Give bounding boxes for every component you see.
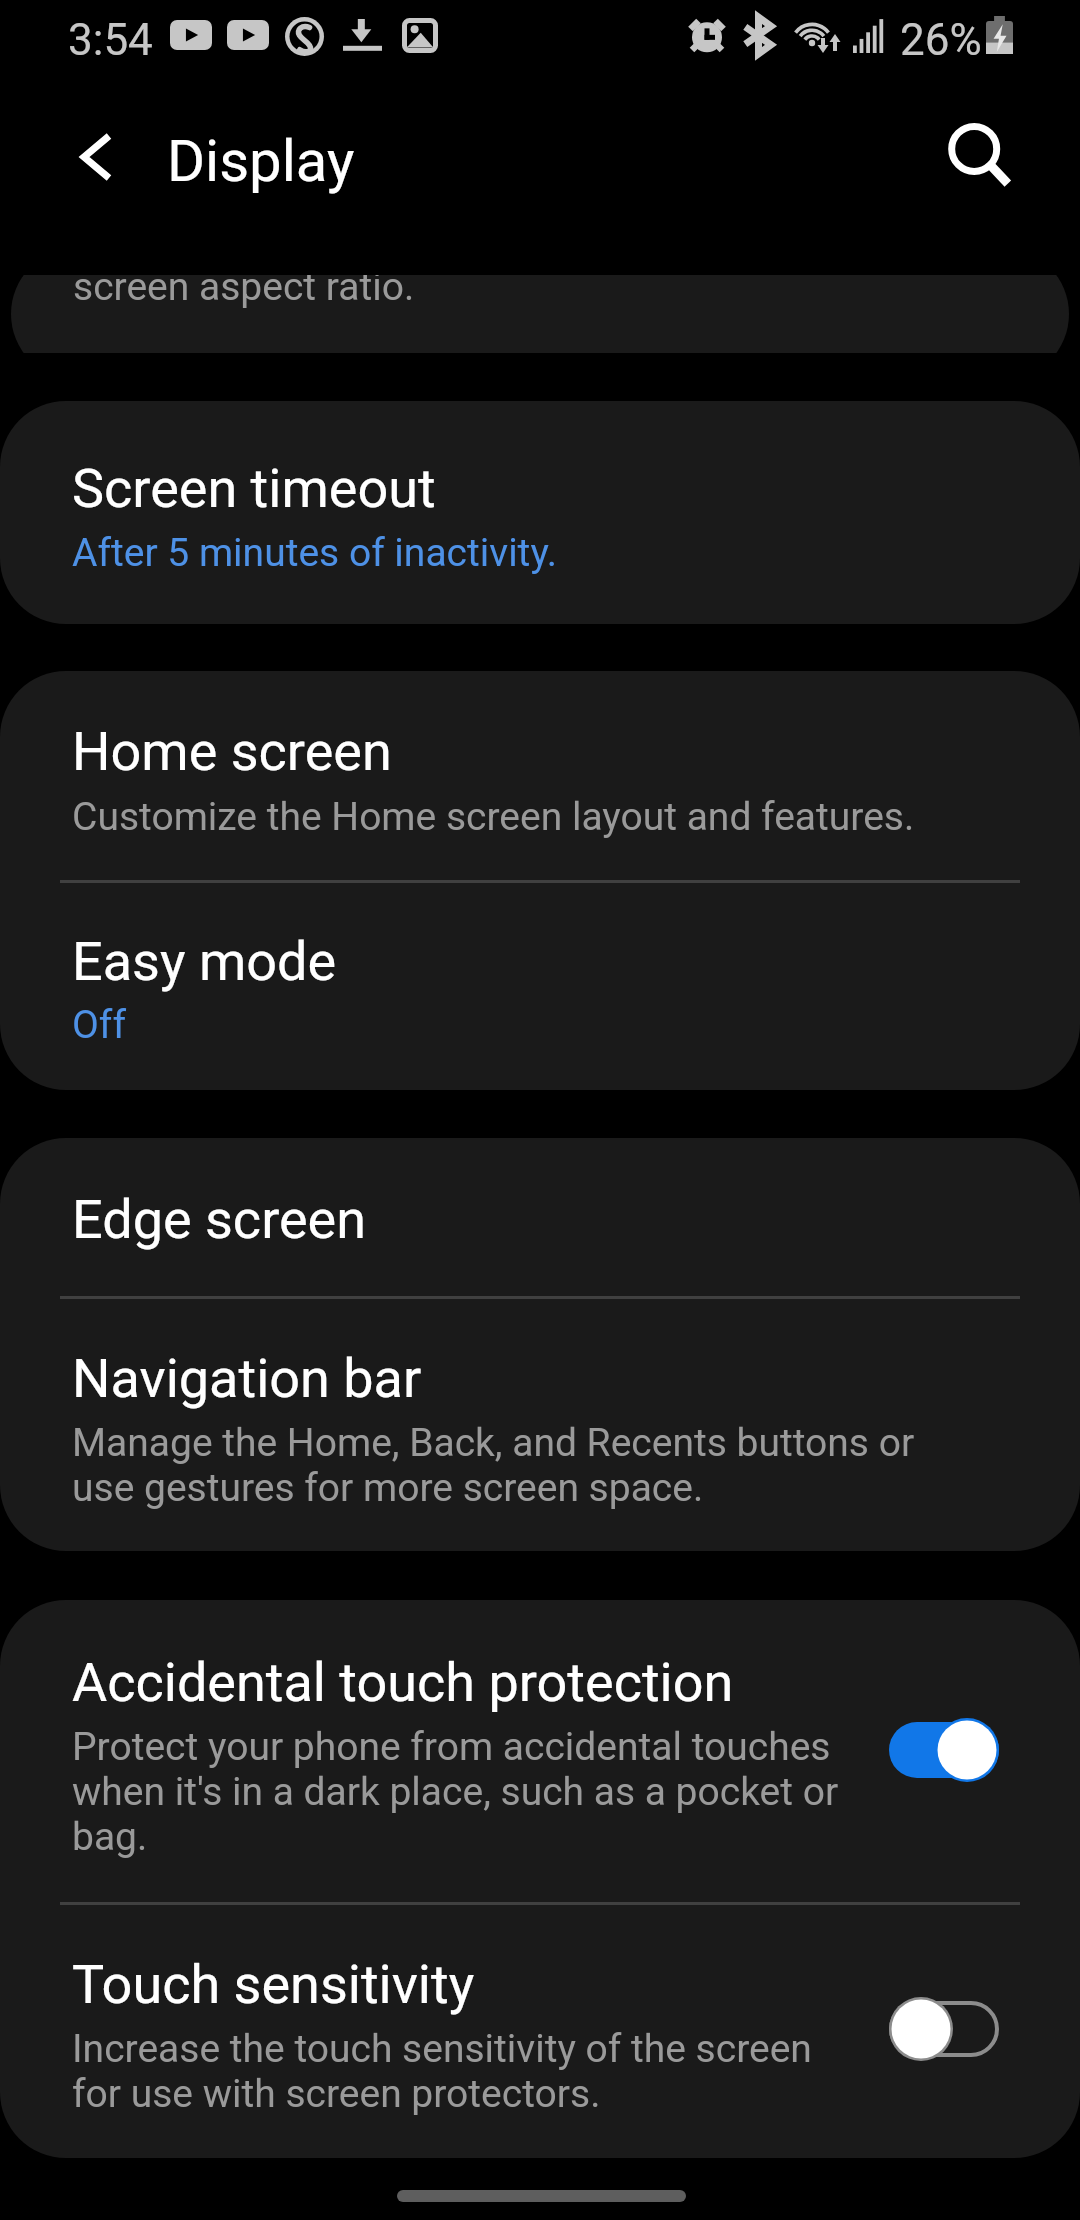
button[interactable]: Navigation bar xyxy=(0,1347,1080,1410)
staticText: Increase the touch sensitivity of the sc… xyxy=(72,2026,812,2072)
staticText: Edge screen xyxy=(72,1188,367,1251)
button[interactable]: Touch sensitivity xyxy=(0,1953,1080,2016)
staticText: Manage the Home, Back, and Recents butto… xyxy=(72,1420,915,1466)
staticText: Home screen xyxy=(72,720,392,783)
staticText: when it's in a dark place, such as a poc… xyxy=(72,1769,839,1815)
button[interactable]: Navigate up xyxy=(50,111,142,203)
staticText: Off xyxy=(72,1002,126,1048)
staticText: Easy mode xyxy=(72,930,337,993)
staticText: use gestures for more screen space. xyxy=(72,1465,704,1511)
staticText: for use with screen protectors. xyxy=(72,2071,601,2117)
button[interactable]: screen aspect ratio. xyxy=(11,275,1069,353)
staticText: Protect your phone from accidental touch… xyxy=(72,1724,831,1770)
button[interactable]: Search xyxy=(934,111,1026,203)
staticText: Customize the Home screen layout and fea… xyxy=(72,794,915,840)
button[interactable]: Screen timeout xyxy=(0,457,1080,520)
button[interactable]: Home screen xyxy=(0,720,1080,783)
button[interactable]: Switch on xyxy=(889,1718,999,1782)
staticText: Screen timeout xyxy=(72,457,436,520)
staticText: Display xyxy=(167,127,355,195)
staticText: Touch sensitivity xyxy=(72,1953,475,2016)
button[interactable]: Edge screen xyxy=(0,1188,1080,1251)
staticText: bag. xyxy=(72,1814,148,1860)
button[interactable]: Easy mode xyxy=(0,930,1080,993)
button[interactable]: Accidental touch protection xyxy=(0,1651,1080,1714)
staticText: Navigation bar xyxy=(72,1347,422,1410)
button[interactable]: Switch off xyxy=(889,1997,999,2061)
staticText: After 5 minutes of inactivity. xyxy=(72,530,558,576)
staticText: 26% xyxy=(900,14,982,66)
staticText: 3:54 xyxy=(68,14,153,66)
staticText: screen aspect ratio. xyxy=(73,275,415,310)
staticText: Accidental touch protection xyxy=(72,1651,734,1714)
